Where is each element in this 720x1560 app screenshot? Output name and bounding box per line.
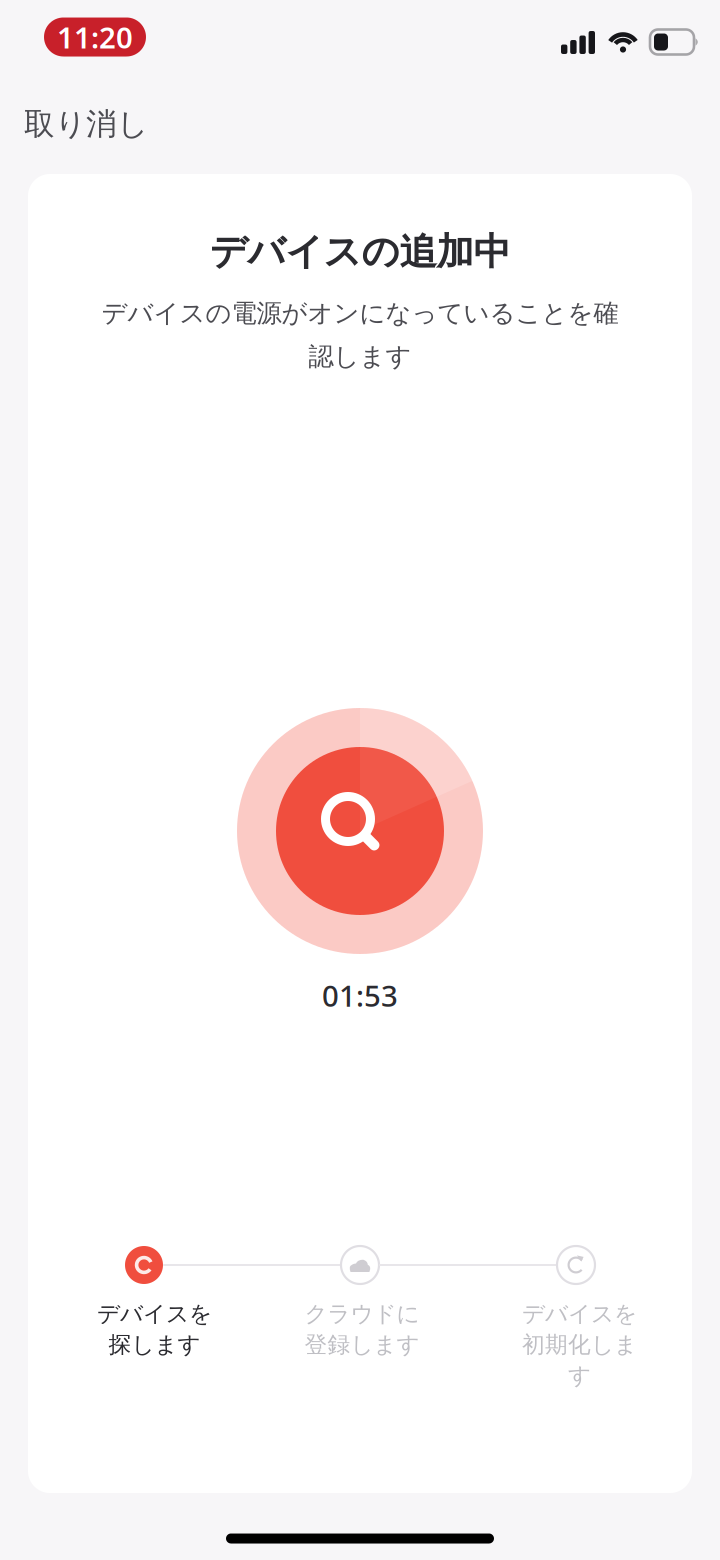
staticText: クラウドに [304, 1300, 419, 1328]
staticText: す [568, 1362, 591, 1389]
button[interactable]: 取り消し [0, 91, 172, 157]
staticText: デバイスの電源がオンになっていることを確 [101, 298, 618, 329]
staticText: 取り消し [24, 105, 148, 143]
staticText: 初期化しま [522, 1331, 637, 1359]
staticText: 11:20 [57, 17, 133, 56]
staticText: 01:53 [322, 976, 398, 1015]
staticText: 認します [308, 341, 411, 372]
staticText: 登録します [304, 1331, 419, 1359]
staticText: 探します [108, 1331, 200, 1359]
staticText: デバイスの追加中 [209, 229, 510, 275]
staticText: デバイスを [522, 1300, 637, 1328]
staticText: デバイスを [97, 1300, 212, 1328]
